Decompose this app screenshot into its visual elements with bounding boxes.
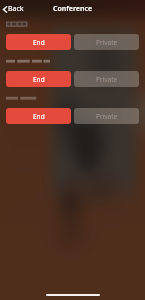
button[interactable]: Private [74, 71, 139, 87]
staticText: Private [96, 112, 118, 121]
staticText: End [33, 75, 45, 84]
staticText: End [33, 38, 45, 47]
staticText: Conference [53, 4, 93, 14]
button[interactable]: End [6, 108, 71, 124]
button[interactable]: Private [74, 34, 139, 50]
staticText: Back [8, 4, 24, 14]
button[interactable]: End [6, 71, 71, 87]
button[interactable]: Back [0, 1, 28, 17]
button[interactable]: End [6, 34, 71, 50]
staticText: End [33, 112, 45, 121]
staticText: Private [96, 38, 118, 47]
staticText: Private [96, 75, 118, 84]
button[interactable]: Private [74, 108, 139, 124]
